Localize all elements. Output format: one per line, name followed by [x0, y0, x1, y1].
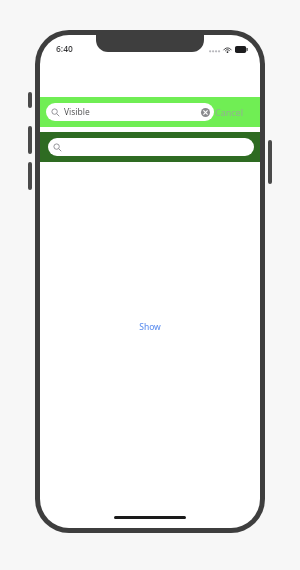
staticText: Cancel [215, 106, 244, 118]
button[interactable]: Cancel [213, 103, 246, 121]
button[interactable]: Visible [46, 103, 214, 121]
staticText: Show [139, 321, 161, 333]
staticText: 6:40 [56, 43, 73, 55]
button[interactable]: Show [133, 317, 167, 337]
button[interactable] [48, 138, 254, 156]
staticText: Visible [64, 106, 90, 118]
button[interactable]: Clear text [201, 108, 210, 117]
